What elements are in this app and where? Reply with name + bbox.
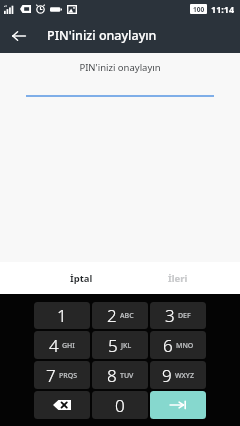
button[interactable]: 0 (92, 391, 148, 419)
staticText: WXYZ (175, 371, 194, 381)
staticText: DEF (178, 311, 191, 321)
staticText: GHI (62, 341, 75, 351)
staticText: PIN'inizi onaylayın (79, 61, 161, 74)
staticText: 8 (107, 364, 117, 387)
button[interactable]: İleri (168, 272, 188, 285)
staticText: JKL (121, 341, 132, 351)
staticText: 7 (46, 364, 56, 387)
staticText: PIN'inizi onaylayın (47, 27, 157, 44)
staticText: 100 (193, 5, 205, 14)
button[interactable]: 8 (92, 361, 148, 389)
button[interactable]: Enter (150, 391, 206, 419)
button[interactable]: İptal (70, 272, 93, 285)
staticText: 6 (163, 334, 173, 357)
staticText: 1 (57, 304, 67, 327)
button[interactable]: 5 (92, 331, 148, 359)
button[interactable]: 7 (34, 361, 90, 389)
staticText: MNO (176, 341, 194, 351)
staticText: İptal (70, 272, 93, 285)
button[interactable]: Backspace (34, 391, 90, 419)
button[interactable]: 4 (34, 331, 90, 359)
staticText: 9 (162, 364, 172, 387)
button[interactable]: 1 (34, 302, 90, 329)
staticText: 5 (108, 334, 118, 357)
staticText: İleri (168, 272, 188, 285)
staticText: 3 (165, 304, 175, 327)
staticText: 2 (107, 304, 117, 327)
staticText: 11:14 (211, 3, 235, 15)
staticText: 4 (49, 334, 59, 357)
staticText: 0 (115, 394, 125, 417)
button[interactable]: 9 (150, 361, 206, 389)
staticText: TUV (120, 371, 134, 381)
button[interactable]: Back (8, 25, 30, 47)
button[interactable]: 2 (92, 302, 148, 329)
staticText: PRQS (59, 371, 78, 381)
staticText: ABC (120, 311, 134, 321)
button[interactable]: 3 (150, 302, 206, 329)
button[interactable]: 6 (150, 331, 206, 359)
